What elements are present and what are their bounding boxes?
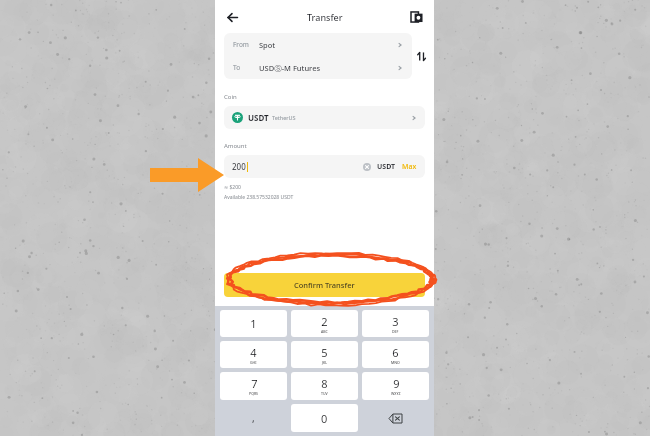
button[interactable]: 4 <box>220 341 287 368</box>
staticText: GHI <box>250 360 257 365</box>
button[interactable]: Clear amount <box>363 163 371 171</box>
staticText: Transfer <box>307 11 343 23</box>
staticText: 7 <box>251 376 258 391</box>
staticText: 2 <box>321 314 328 329</box>
staticText: PQRS <box>249 391 259 396</box>
button[interactable]: From <box>224 33 412 56</box>
button[interactable]: Swap direction <box>411 46 431 66</box>
staticText: Available 238.57532028 USDT <box>224 194 294 201</box>
staticText: Max <box>402 162 417 172</box>
staticText: Confirm Transfer <box>294 280 355 290</box>
button[interactable]: 7 <box>220 372 287 400</box>
staticText: MNO <box>391 360 400 365</box>
staticText: 200 <box>232 161 246 172</box>
staticText: TetherUS <box>272 114 296 121</box>
staticText: 0 <box>321 411 328 426</box>
staticText: 8 <box>321 376 328 391</box>
staticText: , <box>252 411 255 425</box>
button[interactable]: USDT <box>224 106 425 129</box>
staticText: TUV <box>321 391 328 396</box>
staticText: DEF <box>392 329 399 334</box>
button[interactable]: Transfer history <box>406 6 428 28</box>
staticText: ABC <box>321 329 328 334</box>
button[interactable]: Decimal separator <box>218 402 289 434</box>
button[interactable]: 200 <box>224 155 425 178</box>
button[interactable]: 0 <box>291 404 358 432</box>
staticText: USDⓈ-M Futures <box>259 63 321 73</box>
staticText: 4 <box>250 345 257 360</box>
staticText: From <box>233 40 259 49</box>
staticText: Amount <box>224 142 247 150</box>
button[interactable]: Max <box>402 162 417 172</box>
staticText: 9 <box>393 376 400 391</box>
button[interactable]: Confirm Transfer <box>224 273 425 297</box>
button[interactable]: Back <box>220 5 244 29</box>
staticText: ≈ $200 <box>224 184 241 191</box>
button[interactable]: 9 <box>362 372 429 400</box>
staticText: 5 <box>321 345 328 360</box>
button[interactable]: To <box>224 56 412 79</box>
button[interactable]: 8 <box>291 372 358 400</box>
button[interactable]: Backspace <box>360 402 431 434</box>
staticText: 6 <box>392 345 399 360</box>
staticText: WXYZ <box>391 391 401 396</box>
button[interactable]: 5 <box>291 341 358 368</box>
button[interactable]: 6 <box>362 341 429 368</box>
staticText: JKL <box>322 360 328 365</box>
staticText: 1 <box>250 316 257 331</box>
staticText: Spot <box>259 40 276 50</box>
button[interactable]: 3 <box>362 310 429 337</box>
staticText: USDT <box>248 112 269 123</box>
staticText: To <box>233 63 259 72</box>
staticText: USDT <box>377 162 396 172</box>
staticText: 3 <box>392 314 399 329</box>
button[interactable]: 2 <box>291 310 358 337</box>
button[interactable]: 1 <box>220 310 287 337</box>
staticText: Coin <box>224 93 237 101</box>
